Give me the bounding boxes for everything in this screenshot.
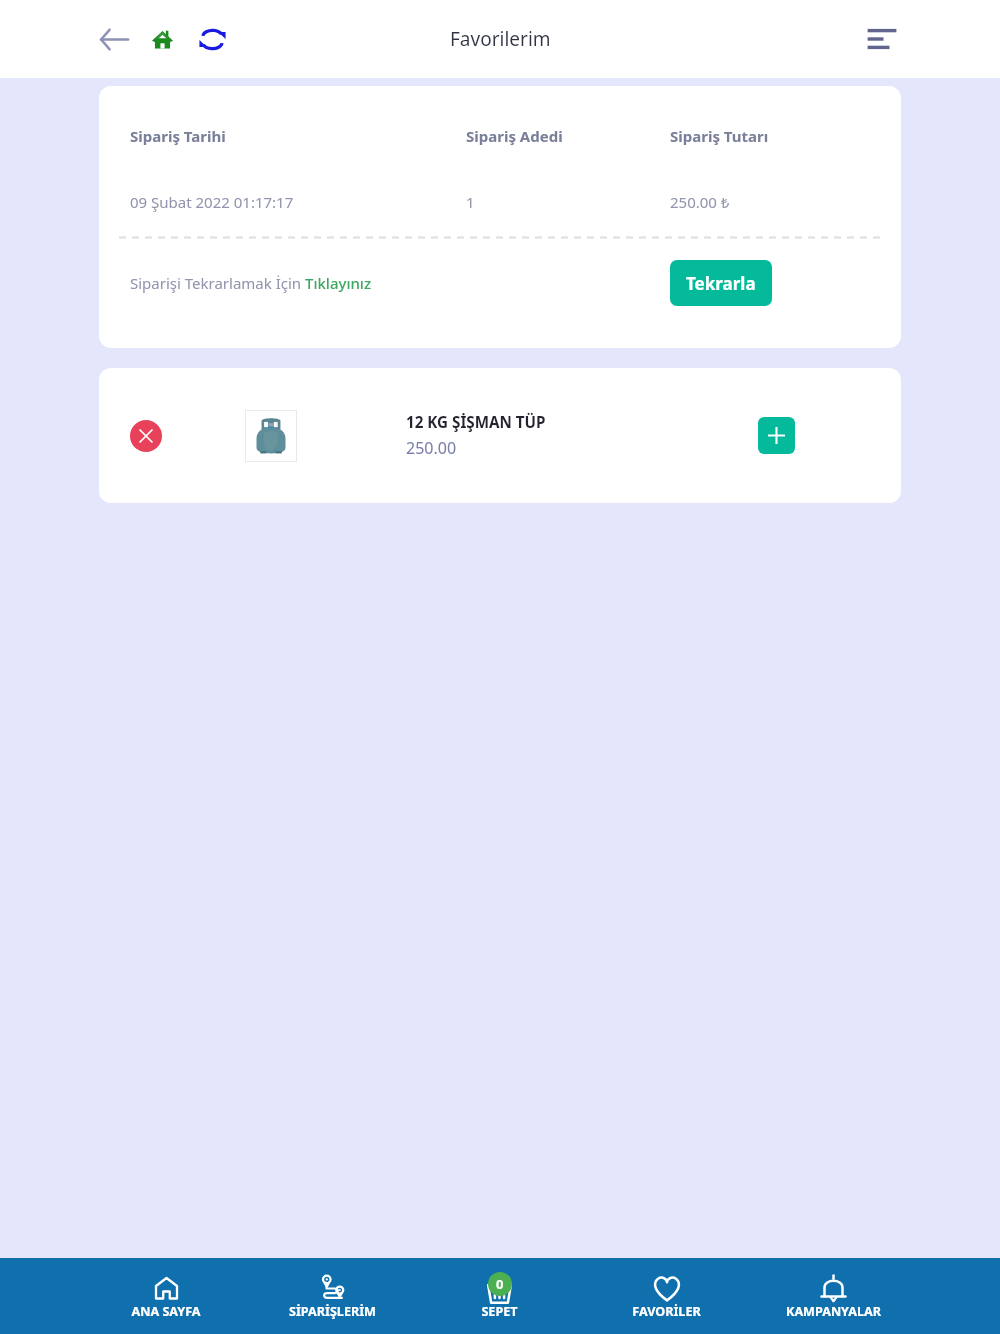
- staticText: ANA SAYFA: [131, 1303, 201, 1320]
- staticText: 0: [496, 1275, 504, 1293]
- staticText: KAMPANYALAR: [786, 1303, 881, 1320]
- staticText: 250.00: [406, 437, 457, 459]
- staticText: Siparişi Tekrarlamak İçin: [130, 273, 305, 293]
- staticText: 09 Şubat 2022 01:17:17: [130, 192, 466, 212]
- button[interactable]: Menu: [860, 17, 904, 61]
- staticText: Favorilerim: [450, 26, 551, 52]
- button[interactable]: Refresh: [190, 17, 234, 61]
- staticText: 1: [466, 192, 670, 212]
- button[interactable]: Remove: [130, 420, 162, 452]
- staticText: 12 KG ŞİŞMAN TÜP: [406, 412, 546, 433]
- button[interactable]: FAVORİLER: [583, 1258, 750, 1334]
- button[interactable]: Siparişi Tekrarlamak İçin: [130, 273, 372, 293]
- staticText: Tıklayınız: [305, 273, 372, 293]
- button[interactable]: Home: [140, 17, 184, 61]
- button[interactable]: SİPARİŞLERİM: [249, 1258, 416, 1334]
- button[interactable]: 0: [416, 1258, 583, 1334]
- staticText: FAVORİLER: [632, 1303, 701, 1320]
- staticText: Sipariş Tarihi: [130, 126, 466, 146]
- staticText: SİPARİŞLERİM: [289, 1303, 376, 1320]
- staticText: Tekrarla: [686, 272, 756, 295]
- staticText: 250.00 ₺: [670, 192, 730, 212]
- staticText: Sipariş Adedi: [466, 126, 670, 146]
- button[interactable]: KAMPANYALAR: [750, 1258, 917, 1334]
- button[interactable]: Back: [92, 17, 136, 61]
- staticText: SEPET: [481, 1303, 518, 1320]
- button[interactable]: Tekrarla: [670, 260, 772, 306]
- staticText: Sipariş Tutarı: [670, 126, 769, 146]
- button[interactable]: Add: [758, 417, 795, 454]
- button[interactable]: ANA SAYFA: [83, 1258, 249, 1334]
